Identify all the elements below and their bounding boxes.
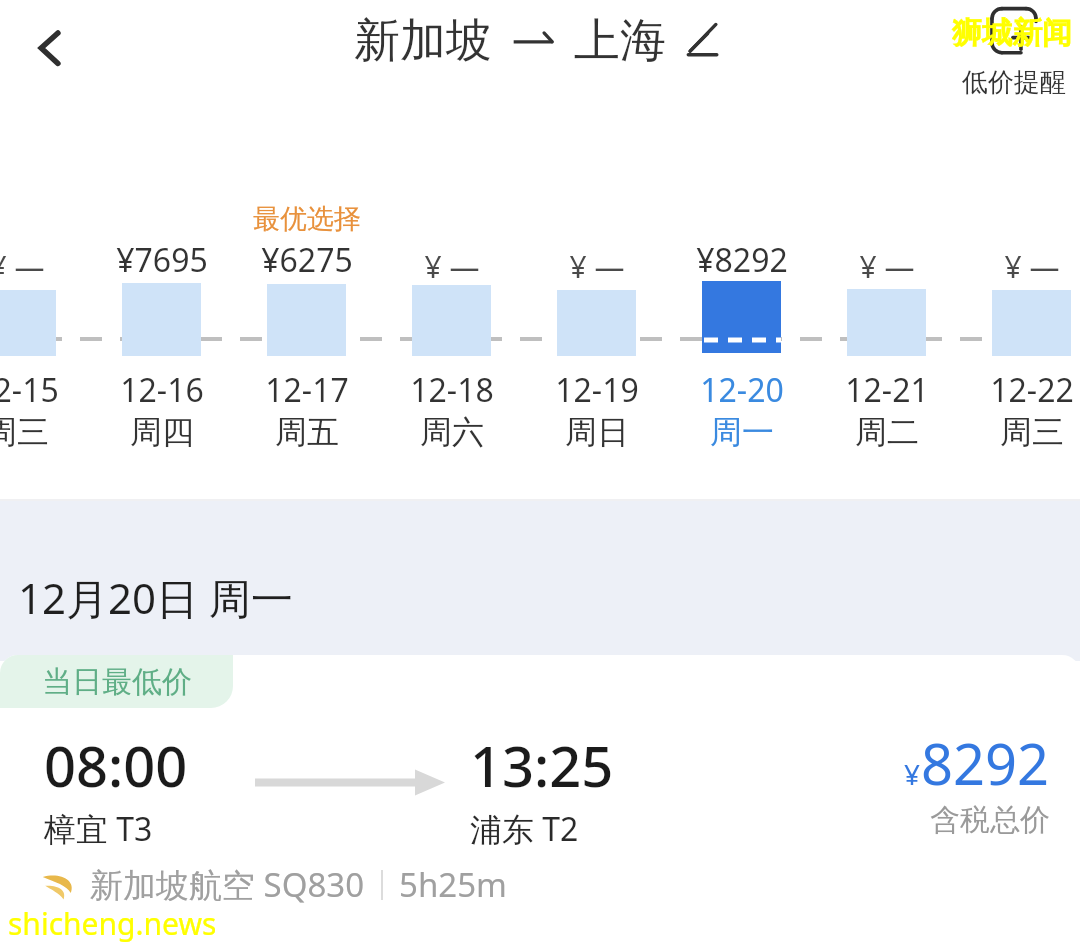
staticText: 周一 <box>670 412 814 452</box>
staticText: 上海 <box>574 12 666 70</box>
staticText: 周二 <box>815 412 959 452</box>
staticText: 12-16 <box>90 368 234 412</box>
staticText: 12-19 <box>525 368 669 412</box>
button[interactable]: 当日最低价 <box>0 655 1080 948</box>
staticText: 5h25m <box>399 862 507 907</box>
staticText: 12-18 <box>380 368 524 412</box>
staticText: 12-22 <box>960 368 1080 412</box>
staticText: 浦东 T2 <box>470 807 579 851</box>
button[interactable]: 最优选择 <box>235 190 379 500</box>
staticText: ¥6275 <box>235 238 379 282</box>
button[interactable]: Back <box>10 8 90 88</box>
button[interactable]: ¥ — <box>525 190 669 500</box>
staticText: 12-21 <box>815 368 959 412</box>
staticText: shicheng.news <box>8 903 217 944</box>
staticText: 12-20 <box>670 368 814 412</box>
staticText: ¥ <box>904 755 921 793</box>
staticText: 周六 <box>380 412 524 452</box>
button[interactable]: 新加坡 <box>354 12 726 70</box>
staticText: 12-17 <box>235 368 379 412</box>
staticText: 含税总价 <box>930 801 1050 839</box>
staticText: 当日最低价 <box>42 663 192 701</box>
button[interactable]: ¥ — <box>960 190 1080 500</box>
staticText: ¥ — <box>525 246 669 287</box>
staticText: 狮城新闻 <box>952 14 1072 52</box>
staticText: 12-15 <box>0 368 89 412</box>
staticText: 8292 <box>921 725 1050 801</box>
staticText: 新加坡航空 SQ830 <box>90 862 365 907</box>
staticText: 08:00 <box>44 727 188 803</box>
staticText: ¥8292 <box>670 238 814 282</box>
staticText: ¥7695 <box>90 238 234 282</box>
button[interactable]: ¥8292 <box>670 190 814 500</box>
staticText: 最优选择 <box>235 202 379 236</box>
staticText: 12月20日 周一 <box>18 569 294 626</box>
staticText: ¥ — <box>815 246 959 287</box>
staticText: 周四 <box>90 412 234 452</box>
button[interactable]: ¥ — <box>815 190 959 500</box>
staticText: 周三 <box>960 412 1080 452</box>
button[interactable]: 低价提醒 <box>962 4 1066 99</box>
staticText: 周三 <box>0 412 89 452</box>
staticText: 周五 <box>235 412 379 452</box>
button[interactable]: ¥ — <box>380 190 524 500</box>
staticText: 樟宜 T3 <box>44 807 153 851</box>
button[interactable]: ¥7695 <box>90 190 234 500</box>
staticText: 低价提醒 <box>962 66 1066 99</box>
staticText: ¥ — <box>960 246 1080 287</box>
staticText: ¥ — <box>380 246 524 287</box>
button[interactable]: ¥ — <box>0 190 89 500</box>
staticText: 13:25 <box>470 727 614 803</box>
staticText: ¥ — <box>0 246 89 287</box>
staticText: 新加坡 <box>354 12 492 70</box>
staticText: 周日 <box>525 412 669 452</box>
